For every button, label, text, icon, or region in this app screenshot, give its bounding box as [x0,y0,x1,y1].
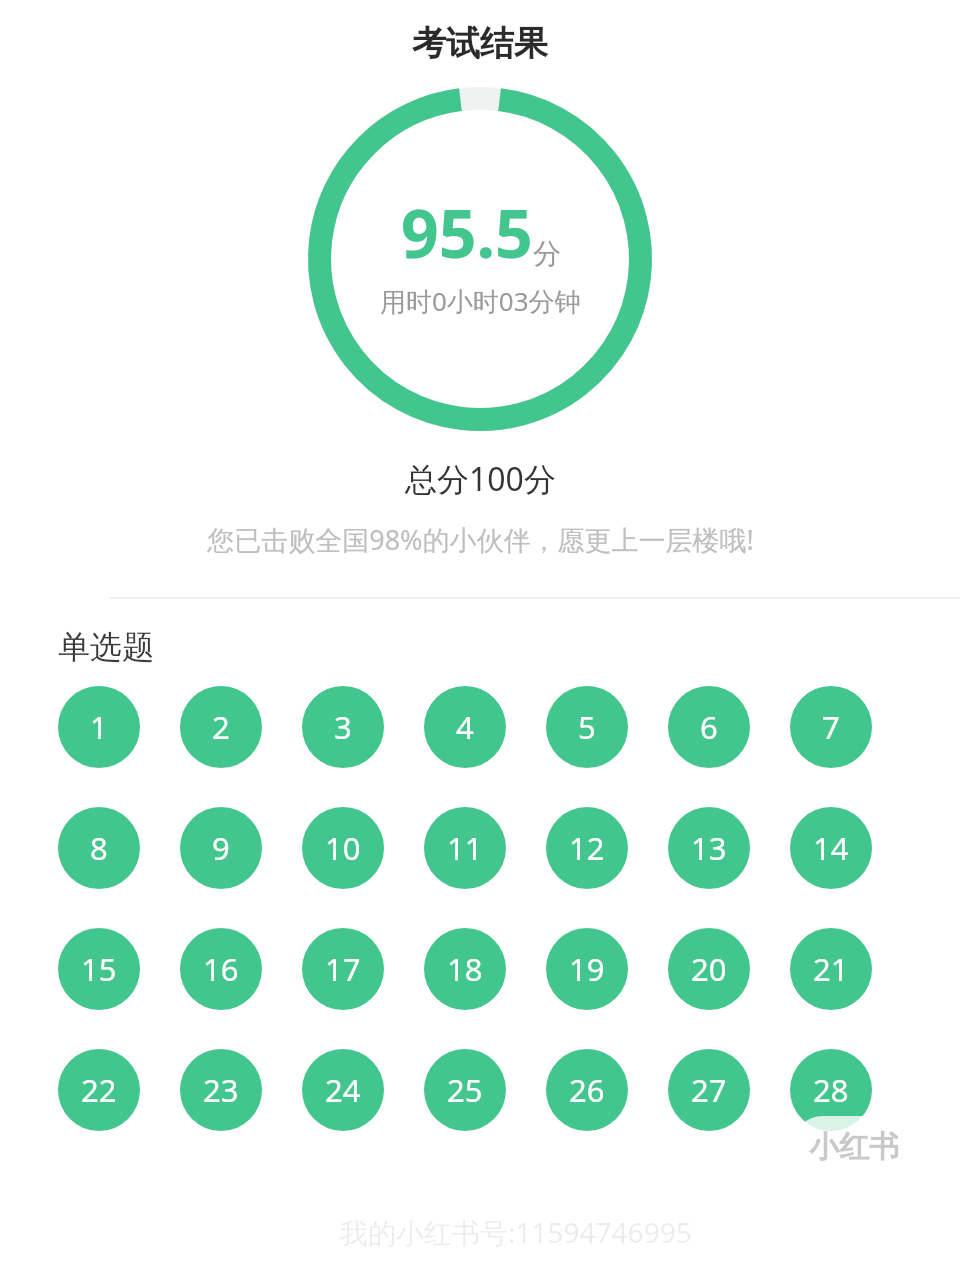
staticText: 单选题 [58,627,154,667]
button[interactable]: 23 [180,1049,262,1131]
staticText: 11 [447,827,483,869]
other: Watermark [792,1116,916,1178]
button[interactable]: 16 [180,928,262,1010]
staticText: 1 [90,706,108,748]
button[interactable]: 8 [58,807,140,889]
staticText: 95.5 [401,187,533,277]
button[interactable]: 25 [424,1049,506,1131]
staticText: 9 [212,827,230,869]
staticText: 27 [691,1069,727,1111]
staticText: 6 [700,706,718,748]
staticText: 分 [533,236,561,271]
staticText: 您已击败全国98%的小伙伴，愿更上一层楼哦! [207,521,754,558]
button[interactable]: 9 [180,807,262,889]
button[interactable]: 1 [58,686,140,768]
button[interactable]: 13 [668,807,750,889]
button[interactable]: 17 [302,928,384,1010]
button[interactable]: 27 [668,1049,750,1131]
button[interactable]: 2 [180,686,262,768]
staticText: 3 [334,706,352,748]
button[interactable]: 14 [790,807,872,889]
staticText: 15 [81,948,117,990]
button[interactable]: 26 [546,1049,628,1131]
button[interactable]: 7 [790,686,872,768]
staticText: 16 [203,948,239,990]
button[interactable]: 22 [58,1049,140,1131]
staticText: 13 [691,827,727,869]
staticText: 14 [813,827,849,869]
button[interactable]: 28 [790,1049,872,1131]
staticText: 5 [578,706,596,748]
button[interactable]: 18 [424,928,506,1010]
staticText: 22 [81,1069,117,1111]
staticText: 21 [813,948,849,990]
staticText: 用时0小时03分钟 [380,283,581,319]
staticText: 28 [813,1069,849,1111]
button[interactable]: 15 [58,928,140,1010]
staticText: 2 [212,706,230,748]
button[interactable]: 10 [302,807,384,889]
staticText: 考试结果 [412,22,548,65]
button[interactable]: 3 [302,686,384,768]
staticText: 23 [203,1069,239,1111]
button[interactable]: 20 [668,928,750,1010]
staticText: 10 [325,827,361,869]
staticText: 我的小红书号:11594746995 [340,1213,692,1251]
button[interactable]: 21 [790,928,872,1010]
staticText: 4 [456,706,474,748]
staticText: 8 [90,827,108,869]
button[interactable]: 6 [668,686,750,768]
staticText: 25 [447,1069,483,1111]
staticText: 26 [569,1069,605,1111]
button[interactable]: 5 [546,686,628,768]
staticText: 20 [691,948,727,990]
staticText: 总分100分 [405,457,556,501]
staticText: 7 [822,706,840,748]
staticText: 17 [325,948,361,990]
staticText: 18 [447,948,483,990]
button[interactable]: 4 [424,686,506,768]
staticText: 小红书 [809,1128,899,1166]
staticText: 19 [569,948,605,990]
staticText: 12 [569,827,605,869]
button[interactable]: 24 [302,1049,384,1131]
button[interactable]: 11 [424,807,506,889]
staticText: 24 [325,1069,361,1111]
button[interactable]: 12 [546,807,628,889]
button[interactable]: 19 [546,928,628,1010]
